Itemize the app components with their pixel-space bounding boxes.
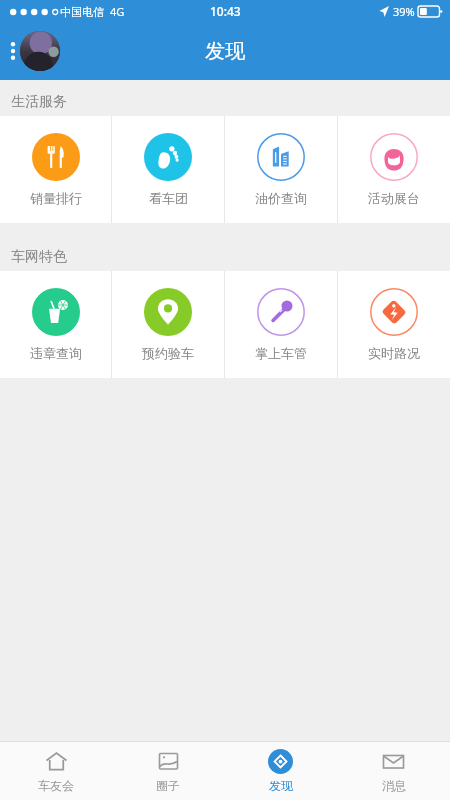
staticText: 10:43 [210,3,241,19]
staticText: 活动展台 [368,190,420,206]
staticText: 中国电信 [60,5,104,19]
staticText: 销量排行 [30,190,82,206]
staticText: 实时路况 [368,345,420,361]
button[interactable]: 消息 [337,742,450,800]
button[interactable]: 油价查询 [225,116,337,223]
staticText: 车友会 [38,778,74,793]
button[interactable]: 违章查询 [0,271,111,378]
staticText: 看车团 [149,190,188,206]
staticText: 4G [110,4,125,19]
staticText: 39% [393,4,415,19]
staticText: 违章查询 [30,345,82,361]
staticText: 发现 [269,778,293,793]
button[interactable]: 实时路况 [338,271,450,378]
staticText: 生活服务 [11,93,67,111]
staticText: 预约验车 [142,345,194,361]
staticText: 圈子 [156,778,180,793]
staticText: 掌上车管 [255,345,307,361]
staticText: 消息 [382,778,406,793]
button[interactable]: 销量排行 [0,116,111,223]
staticText: 油价查询 [255,190,307,206]
button[interactable]: Profile menu [6,27,64,75]
button[interactable]: 看车团 [112,116,224,223]
button[interactable]: 圈子 [112,742,224,800]
button[interactable]: 车友会 [0,742,112,800]
button[interactable]: 活动展台 [338,116,450,223]
button[interactable]: 预约验车 [112,271,224,378]
button[interactable]: 发现 [224,742,337,800]
staticText: 发现 [205,39,245,64]
staticText: 车网特色 [11,248,67,266]
button[interactable]: 掌上车管 [225,271,337,378]
